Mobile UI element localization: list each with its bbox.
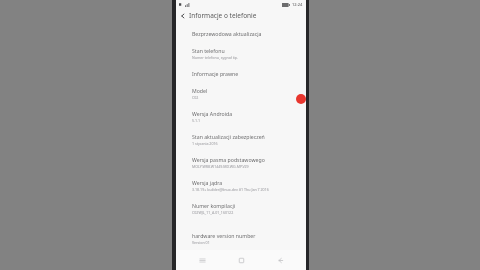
staticText: 12:24 xyxy=(292,2,303,7)
button[interactable]: Wersja jądra xyxy=(176,174,306,197)
button[interactable]: Wstecz xyxy=(267,250,293,270)
staticText: Informacje o telefonie xyxy=(189,11,257,20)
button[interactable]: Bezprzewodowa aktualizacja xyxy=(176,25,306,42)
staticText: 3.18.19+ builder@linux-dev #1 Thu Jan 7 … xyxy=(192,187,298,192)
button[interactable]: Menu xyxy=(189,250,215,270)
staticText: MOLY.WR8.W1449.MD.WG.MP.V29 xyxy=(192,164,298,169)
staticText: Version 01 xyxy=(192,240,298,245)
button[interactable]: hardware version number xyxy=(176,227,306,250)
staticText: C02WJL_11_A.01_160122 xyxy=(192,210,298,215)
staticText: Model xyxy=(192,87,298,94)
staticText: C02 xyxy=(192,95,298,100)
staticText: Wersja Androida xyxy=(192,110,298,117)
staticText: Bezprzewodowa aktualizacja xyxy=(192,30,298,37)
staticText: Numer telefonu, sygnał itp. xyxy=(192,55,298,60)
button[interactable]: Stan telefonu xyxy=(176,42,306,65)
staticText: Stan aktualizacji zabezpieczeń xyxy=(192,133,298,140)
button[interactable]: Model xyxy=(176,82,306,105)
staticText: Stan telefonu xyxy=(192,47,298,54)
button[interactable]: Wstecz xyxy=(176,9,189,22)
staticText: 5.1.1 xyxy=(192,118,298,123)
staticText: hardware version number xyxy=(192,232,298,239)
button[interactable]: Wersja Androida xyxy=(176,105,306,128)
staticText: Wersja jądra xyxy=(192,179,298,186)
button[interactable]: Ekran główny xyxy=(228,250,254,270)
button[interactable]: Informacje prawne xyxy=(176,65,306,82)
button[interactable]: Stan aktualizacji zabezpieczeń xyxy=(176,128,306,151)
button[interactable]: Numer kompilacji xyxy=(176,197,306,220)
staticText: Numer kompilacji xyxy=(192,202,298,209)
staticText: Wersja pasma podstawowego xyxy=(192,156,298,163)
staticText: Informacje prawne xyxy=(192,70,298,77)
staticText: 1 stycznia 2016 xyxy=(192,141,298,146)
button[interactable]: Wersja pasma podstawowego xyxy=(176,151,306,174)
